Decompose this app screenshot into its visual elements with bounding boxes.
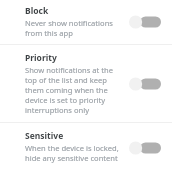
staticText: Block [25,5,49,17]
staticText: Priority [25,52,57,64]
staticText: Never show notifications from this app [25,18,124,38]
button[interactable]: Priority toggle, off [128,73,162,95]
staticText: Show notifications at the top of the lis… [25,65,124,115]
button[interactable]: Block [0,0,172,44]
button[interactable]: Sensitive toggle, off [128,137,162,159]
button[interactable]: Sensitive [0,123,172,172]
button[interactable]: Block toggle, off [128,11,162,33]
staticText: Sensitive [25,130,64,142]
staticText: When the device is locked, hide any sens… [25,143,124,165]
button[interactable]: Priority [0,45,172,122]
